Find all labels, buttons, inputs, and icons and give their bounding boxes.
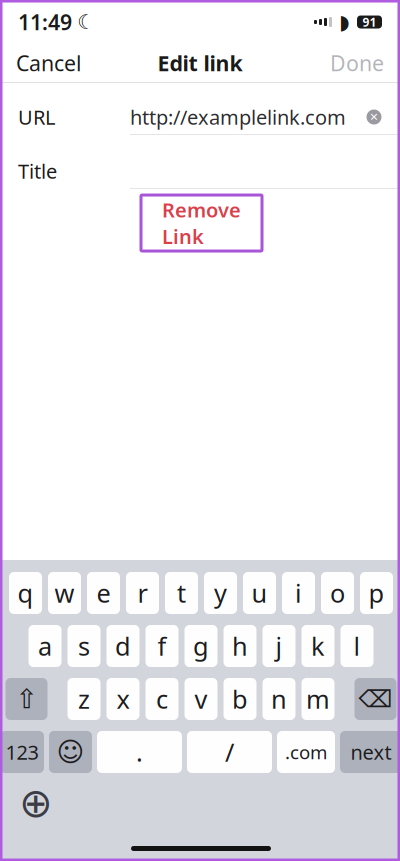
staticText: s	[78, 629, 90, 663]
button[interactable]: w	[48, 572, 81, 614]
button[interactable]: Cancel	[0, 40, 98, 86]
staticText: ◗	[339, 11, 350, 33]
staticText: o	[330, 576, 345, 610]
staticText: f	[157, 629, 166, 663]
staticText: v	[194, 682, 207, 716]
button[interactable]: f	[145, 625, 178, 667]
staticText: n	[271, 682, 287, 716]
button[interactable]: p	[360, 572, 393, 614]
staticText: .	[136, 735, 143, 769]
button[interactable]: Shift	[5, 678, 47, 720]
button[interactable]: next	[340, 731, 400, 773]
staticText: ⇧	[15, 684, 37, 714]
button[interactable]: j	[262, 625, 295, 667]
staticText: 91	[362, 14, 376, 30]
button[interactable]: c	[145, 678, 178, 720]
button[interactable]: g	[184, 625, 217, 667]
button[interactable]: m	[301, 678, 334, 720]
button[interactable]: i	[282, 572, 315, 614]
button[interactable]: q	[9, 572, 42, 614]
staticText: Title	[18, 158, 57, 184]
button[interactable]: Done	[314, 40, 400, 86]
button[interactable]: d	[106, 625, 139, 667]
button[interactable]: n	[262, 678, 295, 720]
staticText: r	[137, 576, 147, 610]
staticText: http://examplelink.com	[130, 104, 346, 130]
staticText: d	[115, 629, 131, 663]
button[interactable]: a	[28, 625, 61, 667]
staticText: u	[251, 576, 267, 610]
staticText: b	[232, 682, 248, 716]
staticText: 11:49	[18, 8, 72, 36]
staticText: next	[350, 739, 391, 765]
staticText: w	[54, 576, 74, 610]
staticText: t	[177, 576, 186, 610]
button[interactable]: u	[243, 572, 276, 614]
button[interactable]: o	[321, 572, 354, 614]
staticText: ⌫	[358, 685, 392, 713]
button[interactable]: 123	[0, 731, 44, 773]
staticText: k	[311, 629, 325, 663]
button[interactable]: v	[184, 678, 217, 720]
staticText: q	[17, 576, 33, 610]
button[interactable]: x	[106, 678, 139, 720]
button[interactable]: k	[301, 625, 334, 667]
staticText: a	[38, 629, 52, 663]
staticText: ⊕	[19, 780, 53, 826]
button[interactable]: t	[165, 572, 198, 614]
button[interactable]: Remove Link	[141, 195, 262, 251]
staticText: .com	[285, 740, 327, 764]
button[interactable]: Emoji	[49, 731, 92, 773]
staticText: Remove Link	[162, 196, 241, 249]
staticText: Edit link	[157, 49, 242, 77]
staticText: 123	[5, 739, 38, 765]
button[interactable]: s	[67, 625, 100, 667]
staticText: g	[193, 629, 209, 663]
staticText: Done	[330, 49, 384, 77]
staticText: e	[96, 576, 110, 610]
button[interactable]: Next keyboard	[13, 783, 59, 823]
staticText: URL	[18, 104, 55, 130]
staticText: h	[232, 629, 248, 663]
staticText: Cancel	[16, 49, 82, 77]
button[interactable]: Clear text	[360, 102, 388, 132]
button[interactable]: b	[223, 678, 256, 720]
staticText: j	[275, 629, 282, 663]
staticText: x	[116, 682, 129, 716]
staticText: ✕	[369, 111, 378, 123]
staticText: c	[156, 682, 168, 716]
button[interactable]: y	[204, 572, 237, 614]
button[interactable]: h	[223, 625, 256, 667]
button[interactable]: .com	[277, 731, 335, 773]
button[interactable]: r	[126, 572, 159, 614]
staticText: z	[78, 682, 90, 716]
staticText: p	[368, 576, 384, 610]
staticText: m	[306, 682, 330, 716]
staticText: ☾	[77, 11, 95, 33]
button[interactable]: z	[67, 678, 100, 720]
staticText: /	[225, 735, 234, 769]
button[interactable]: .	[97, 731, 182, 773]
button[interactable]: /	[187, 731, 272, 773]
staticText: ☺	[56, 737, 84, 767]
button[interactable]: l	[340, 625, 373, 667]
staticText: l	[353, 629, 360, 663]
button[interactable]: e	[87, 572, 120, 614]
staticText: y	[214, 576, 227, 610]
button[interactable]: Delete	[354, 678, 396, 720]
staticText: i	[295, 576, 302, 610]
